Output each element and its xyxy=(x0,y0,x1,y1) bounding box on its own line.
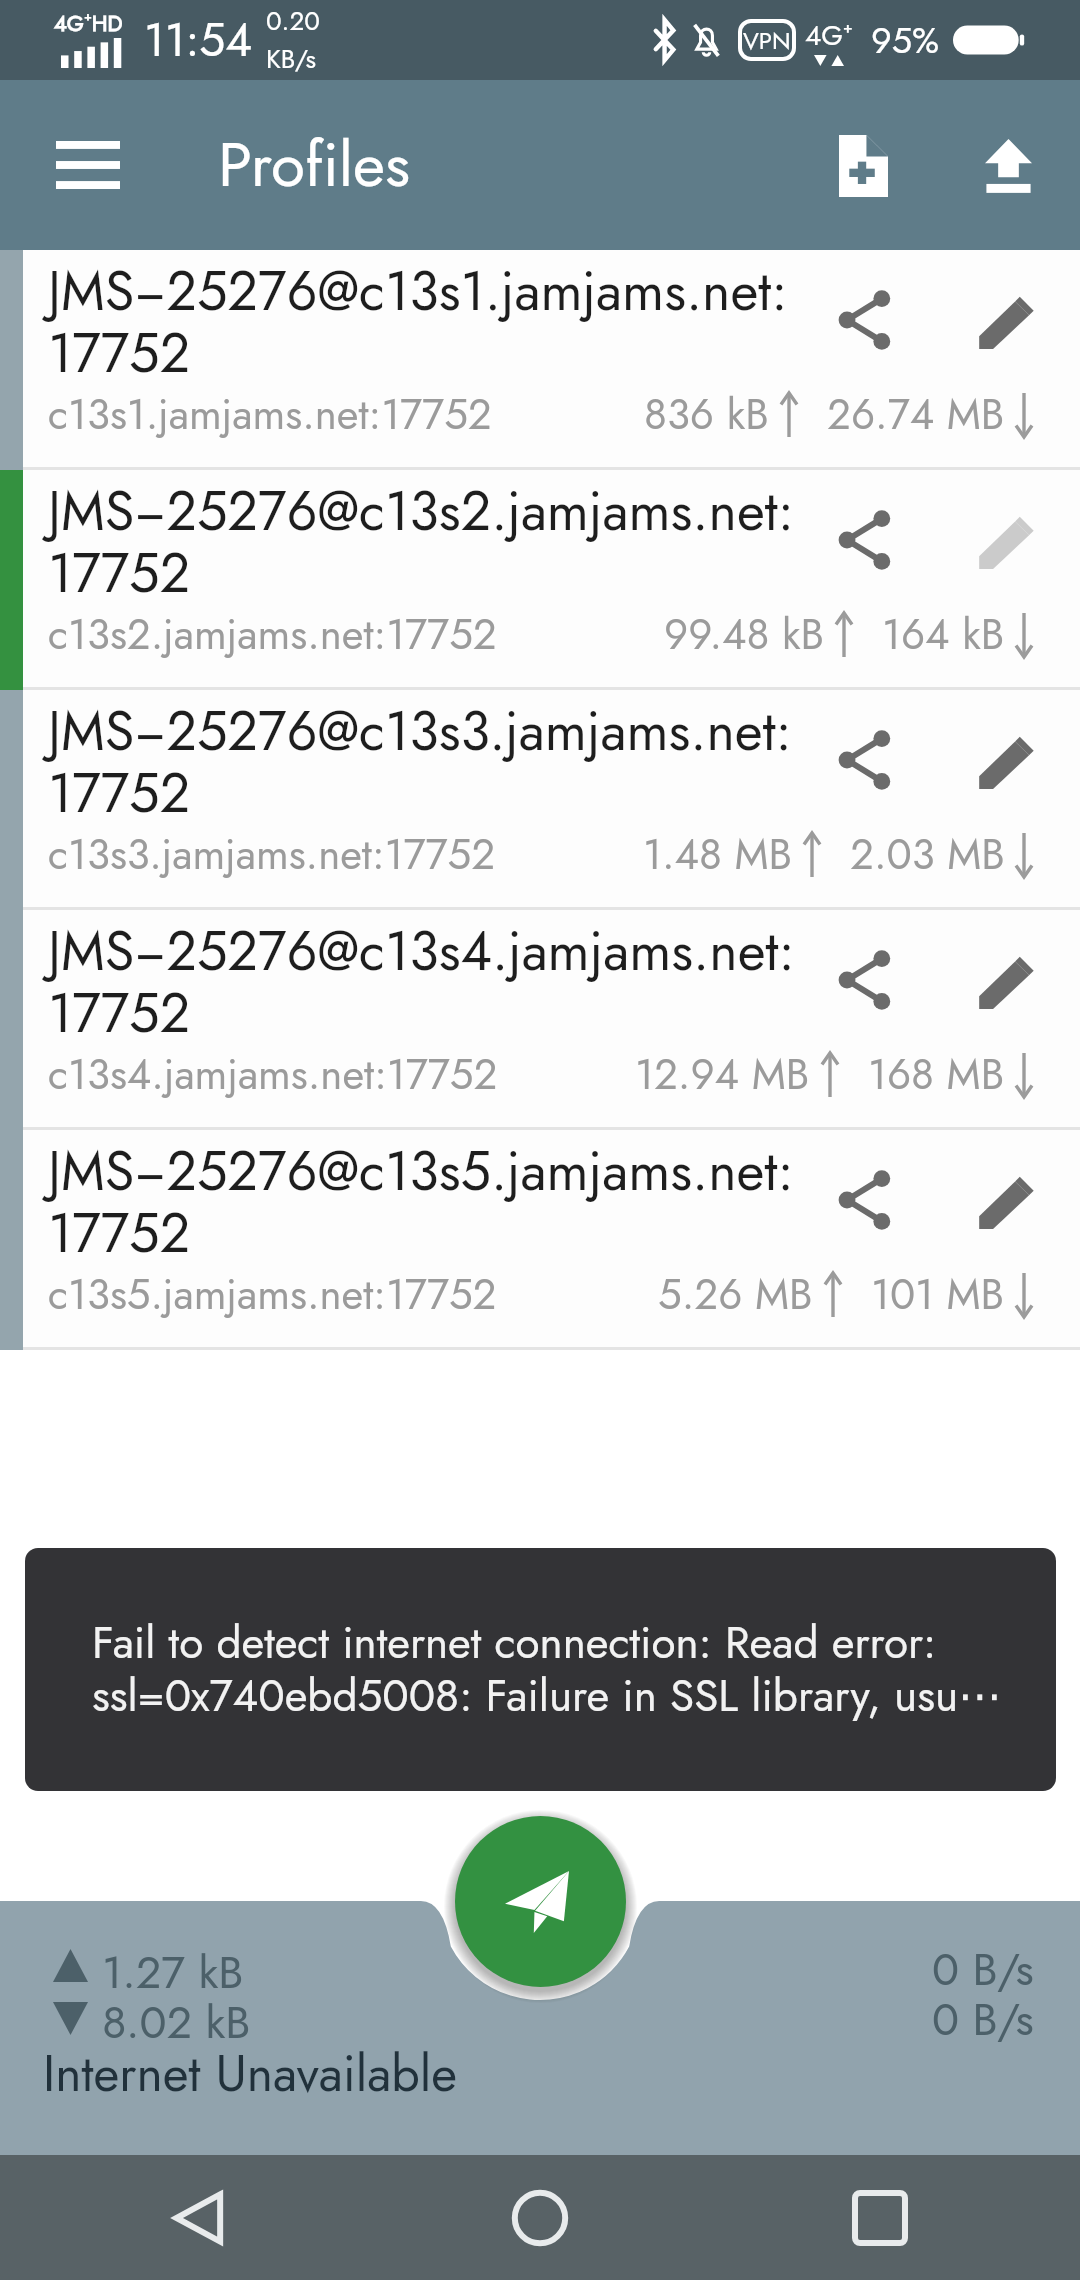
staticText: c13s1.jamjams.net:17752 xyxy=(48,384,492,445)
staticText: 99.48 kB xyxy=(664,604,824,665)
staticText: c13s5.jamjams.net:17752 xyxy=(48,1264,497,1325)
button[interactable]: Edit profile xyxy=(943,256,1071,384)
staticText: c13s4.jamjams.net:17752 xyxy=(48,1044,498,1105)
staticText: c13s2.jamjams.net:17752 xyxy=(48,604,497,665)
staticText: 0 B/s xyxy=(932,1987,1034,2052)
button[interactable]: Share profile xyxy=(787,256,943,384)
button[interactable]: Edit profile xyxy=(943,476,1071,604)
button[interactable]: JMS−25276@c13s4.jamjams.net: 17752 xyxy=(0,910,1080,1127)
staticText: JMS−25276@c13s4.jamjams.net: 17752 xyxy=(48,912,795,1052)
staticText: JMS−25276@c13s2.jamjams.net: 17752 xyxy=(48,472,794,612)
staticText: 168 MB xyxy=(868,1044,1005,1105)
button[interactable]: Connect xyxy=(455,1816,626,1987)
staticText: 1.27 kB xyxy=(102,1940,244,2005)
staticText: JMS−25276@c13s3.jamjams.net: 17752 xyxy=(48,692,792,832)
staticText: 164 kB xyxy=(882,604,1005,665)
staticText: KB/s xyxy=(266,40,317,78)
staticText: Internet Unavailable xyxy=(43,2037,458,2109)
button[interactable]: Edit profile xyxy=(943,916,1071,1044)
staticText: 11:54 xyxy=(144,7,252,73)
button[interactable]: JMS−25276@c13s2.jamjams.net: 17752 xyxy=(0,470,1080,687)
staticText: 0 B/s xyxy=(932,1937,1034,2002)
button[interactable]: Back xyxy=(145,2163,255,2273)
button[interactable]: Edit profile xyxy=(943,696,1071,824)
staticText: 26.74 MB xyxy=(827,384,1005,445)
button[interactable]: JMS−25276@c13s1.jamjams.net: 17752 xyxy=(0,250,1080,467)
staticText: 4G⁺ xyxy=(805,15,853,55)
staticText: c13s3.jamjams.net:17752 xyxy=(48,824,496,885)
staticText: VPN xyxy=(743,23,791,58)
button[interactable]: JMS−25276@c13s5.jamjams.net: 17752 xyxy=(0,1130,1080,1347)
button[interactable]: Recent apps xyxy=(825,2163,935,2273)
staticText: 2.03 MB xyxy=(850,824,1005,885)
staticText: 0.20 xyxy=(266,2,320,40)
staticText: 5.26 MB xyxy=(658,1264,813,1325)
button[interactable]: Add profile xyxy=(791,93,936,238)
staticText: 95% xyxy=(871,14,940,66)
button[interactable]: Share profile xyxy=(787,916,943,1044)
staticText: 12.94 MB xyxy=(635,1044,810,1105)
staticText: Fail to detect internet connection: Read… xyxy=(92,1611,1003,1727)
button[interactable]: Import profile from file xyxy=(936,94,1080,238)
button[interactable]: Open navigation drawer xyxy=(28,105,148,225)
button[interactable]: Edit profile xyxy=(943,1136,1071,1264)
staticText: 1.48 MB xyxy=(643,824,792,885)
staticText: 8.02 kB xyxy=(102,1990,251,2055)
staticText: 101 MB xyxy=(871,1264,1005,1325)
staticText: JMS−25276@c13s5.jamjams.net: 17752 xyxy=(48,1132,794,1272)
staticText: 4G⁺HD xyxy=(54,7,123,39)
button[interactable]: Home xyxy=(485,2163,595,2273)
button[interactable]: Share profile xyxy=(787,476,943,604)
button[interactable]: Share profile xyxy=(787,696,943,824)
staticText: Profiles xyxy=(218,120,410,210)
button[interactable]: JMS−25276@c13s3.jamjams.net: 17752 xyxy=(0,690,1080,907)
staticText: JMS−25276@c13s1.jamjams.net: 17752 xyxy=(48,252,788,392)
staticText: 836 kB xyxy=(644,384,769,445)
button[interactable]: Share profile xyxy=(787,1136,943,1264)
